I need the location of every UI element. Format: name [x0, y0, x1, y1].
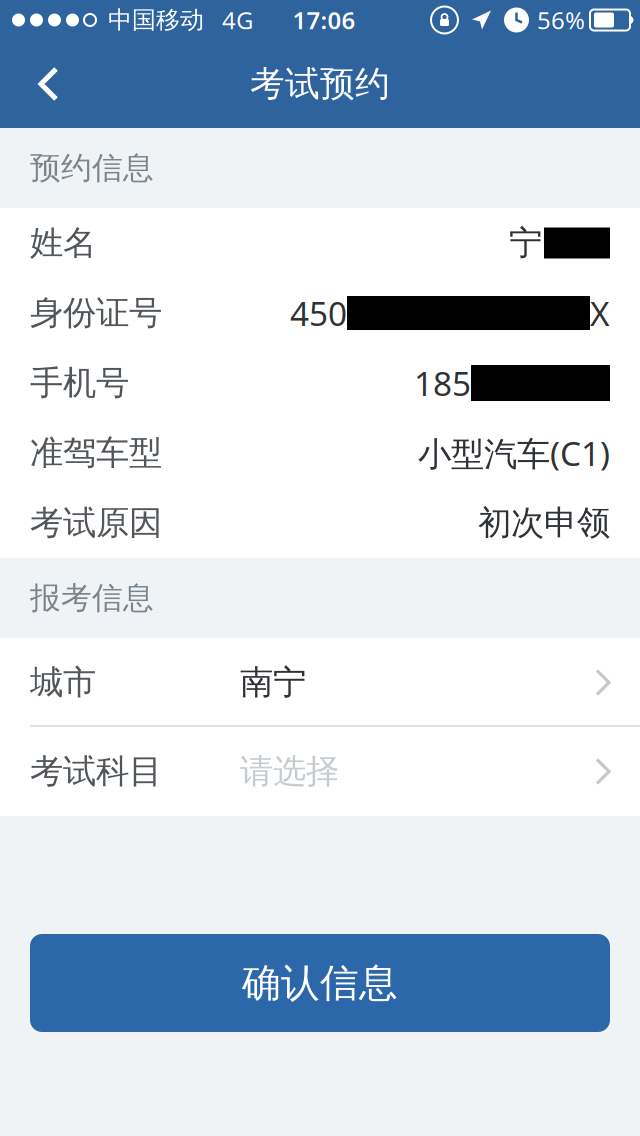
staticText: 4G — [222, 4, 253, 36]
staticText: 小型汽车(C1) — [418, 431, 610, 475]
staticText: 56% — [537, 4, 585, 36]
button[interactable]: 考试科目 — [0, 727, 640, 816]
staticText: 请选择 — [240, 751, 339, 792]
staticText: 手机号 — [30, 362, 129, 403]
staticText: 宁 — [509, 222, 542, 263]
staticText: 450 — [290, 291, 347, 335]
staticText: 17:06 — [292, 4, 355, 36]
staticText: 初次申领 — [478, 502, 610, 543]
staticText: 预约信息 — [30, 149, 154, 187]
button[interactable]: Back — [0, 40, 100, 128]
staticText: 姓名 — [30, 222, 96, 263]
staticText: X — [590, 291, 610, 335]
staticText: 考试原因 — [30, 502, 162, 543]
staticText: 南宁 — [240, 662, 306, 703]
staticText: 报考信息 — [30, 579, 154, 617]
staticText: 考试科目 — [30, 751, 162, 792]
staticText: 准驾车型 — [30, 432, 162, 473]
button[interactable]: 城市 — [0, 638, 640, 727]
button[interactable]: 确认信息 — [30, 934, 610, 1032]
staticText: 确认信息 — [242, 959, 398, 1007]
staticText: 城市 — [30, 662, 96, 703]
staticText: 身份证号 — [30, 292, 162, 333]
staticText: 考试预约 — [250, 63, 390, 105]
staticText: 185 — [414, 361, 471, 405]
staticText: 中国移动 — [108, 5, 204, 35]
